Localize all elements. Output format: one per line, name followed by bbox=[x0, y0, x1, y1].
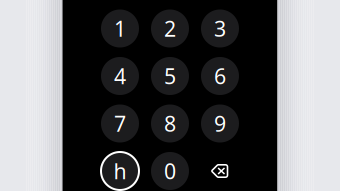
button[interactable]: 4 bbox=[101, 57, 139, 95]
button[interactable]: 1 bbox=[101, 9, 139, 47]
button[interactable]: 5 bbox=[151, 57, 189, 95]
staticText: 0 bbox=[164, 157, 176, 185]
staticText: 6 bbox=[214, 62, 226, 90]
staticText: 1 bbox=[114, 14, 126, 43]
staticText: 7 bbox=[114, 109, 126, 138]
button[interactable]: 2 bbox=[151, 9, 189, 47]
button[interactable]: Delete bbox=[201, 152, 239, 190]
staticText: 5 bbox=[164, 62, 176, 90]
staticText: h bbox=[113, 157, 126, 185]
button[interactable]: 9 bbox=[201, 104, 239, 142]
staticText: 8 bbox=[164, 109, 176, 138]
button[interactable]: 3 bbox=[201, 9, 239, 47]
button[interactable]: 7 bbox=[101, 104, 139, 142]
staticText: 3 bbox=[214, 14, 226, 43]
button[interactable]: 8 bbox=[151, 104, 189, 142]
staticText: 2 bbox=[164, 14, 176, 43]
button[interactable]: 0 bbox=[151, 152, 189, 190]
staticText: 9 bbox=[214, 109, 226, 138]
staticText: 4 bbox=[114, 62, 126, 90]
button[interactable]: h bbox=[101, 152, 139, 190]
button[interactable]: 6 bbox=[201, 57, 239, 95]
